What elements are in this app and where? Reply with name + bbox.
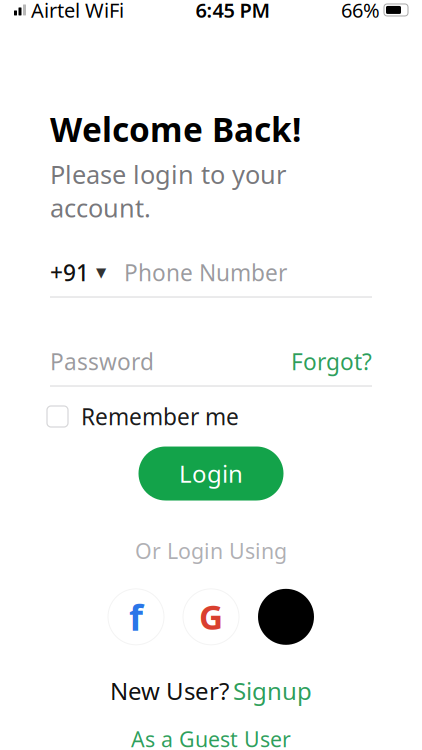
staticText: Signup (233, 675, 312, 707)
staticText: Forgot? (291, 346, 372, 377)
button[interactable]: Sign in with Facebook (108, 589, 164, 645)
staticText: 6:45 PM (195, 0, 270, 23)
staticText: Phone Number (124, 257, 287, 288)
button[interactable]: Login (138, 446, 283, 500)
staticText: Welcome Back! (50, 107, 301, 151)
staticText: Or Login Using (135, 536, 287, 565)
staticText: G (199, 595, 223, 639)
staticText: +91 (50, 257, 89, 288)
button[interactable]: Signup (229, 675, 312, 707)
staticText: ▼ (96, 265, 106, 280)
staticText: Password (50, 346, 154, 377)
staticText: As a Guest User (131, 725, 291, 750)
button[interactable]: Sign in with Google (183, 589, 239, 645)
staticText: f (129, 593, 143, 641)
staticText: Login (179, 458, 243, 489)
button[interactable]: As a Guest User (123, 721, 299, 750)
button[interactable]: Remember me (47, 400, 375, 432)
staticText: Remember me (81, 401, 239, 432)
button[interactable]: +91 (50, 257, 110, 288)
staticText: New User? (110, 675, 229, 707)
staticText: 66% (341, 0, 380, 23)
staticText: Please login to your account. (50, 157, 286, 224)
staticText: Airtel WiFi (31, 0, 124, 23)
button[interactable]: Sign in with Apple (258, 589, 314, 645)
button[interactable]: Forgot? (291, 346, 372, 377)
